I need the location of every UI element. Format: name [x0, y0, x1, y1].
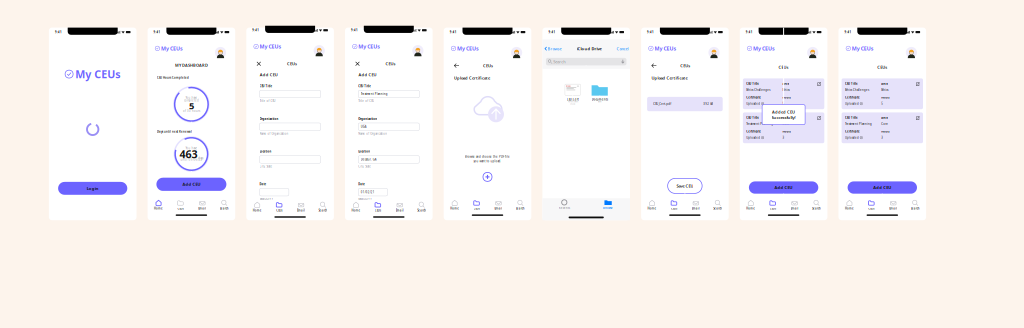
- button[interactable]: Back: [651, 63, 657, 68]
- staticText: Ethics: [782, 88, 789, 92]
- staticText: Email: [692, 207, 700, 210]
- staticText: Search: [417, 209, 426, 212]
- button[interactable]: Edit: [916, 82, 920, 86]
- staticText: Treatment Planning: [845, 122, 872, 126]
- staticText: MM/DD/YY: [358, 197, 372, 201]
- staticText: CEUs: [770, 207, 776, 210]
- button[interactable]: CEUs: [860, 199, 882, 211]
- button[interactable]: Email: [882, 199, 904, 211]
- staticText: Email: [494, 207, 502, 210]
- button[interactable]: Email: [784, 199, 805, 211]
- staticText: CEUs: [276, 209, 282, 212]
- staticText: CEUs: [868, 207, 874, 210]
- button[interactable]: Search: [213, 199, 235, 211]
- staticText: Certificate: [746, 130, 761, 133]
- staticText: you want to upload.: [473, 159, 501, 163]
- button[interactable]: Search: [411, 200, 433, 213]
- staticText: Home: [746, 207, 755, 210]
- button[interactable]: Close: [257, 62, 261, 66]
- staticText: Date: [259, 182, 266, 186]
- staticText: Certificate: [746, 96, 761, 99]
- button[interactable]: Email: [389, 200, 411, 213]
- staticText: Organization: [358, 117, 377, 121]
- staticText: Cancel: [617, 46, 629, 51]
- button[interactable]: Save CEU: [668, 178, 702, 193]
- button[interactable]: Search: [509, 199, 531, 211]
- staticText: 5: [189, 99, 194, 112]
- button[interactable]: Home: [345, 200, 367, 213]
- staticText: Hours: [782, 130, 790, 133]
- button[interactable]: Home: [838, 199, 860, 211]
- staticText: Ethics Challenges: [845, 88, 869, 92]
- staticText: My CEUs: [358, 43, 380, 50]
- staticText: Login: [87, 186, 99, 191]
- button[interactable]: CEUs: [466, 199, 487, 211]
- button[interactable]: CEUs: [762, 199, 784, 211]
- staticText: 392 kB: [703, 102, 713, 106]
- button[interactable]: Cancel: [617, 47, 629, 51]
- button[interactable]: Close: [355, 62, 360, 66]
- button[interactable]: Login: [58, 182, 127, 195]
- staticText: Add CEU: [358, 72, 376, 77]
- button[interactable]: Edit: [916, 116, 920, 120]
- button[interactable]: Home: [444, 199, 466, 211]
- staticText: Home: [154, 207, 163, 210]
- button[interactable]: Back: [454, 63, 459, 68]
- button[interactable]: Home: [641, 199, 663, 211]
- staticText: Home: [351, 209, 360, 212]
- staticText: Save CEU: [676, 183, 693, 188]
- staticText: My CEUs: [852, 45, 874, 52]
- staticText: Area: [782, 82, 789, 85]
- button[interactable]: Home: [740, 199, 762, 211]
- staticText: Home: [647, 207, 656, 210]
- button[interactable]: Email: [290, 200, 312, 213]
- staticText: Browse and choose the PDF file: [465, 155, 510, 158]
- button[interactable]: CEUs: [268, 200, 290, 213]
- button[interactable]: CEUs: [169, 199, 191, 211]
- staticText: 9:41: [548, 30, 555, 34]
- staticText: Area: [782, 116, 789, 119]
- button[interactable]: Browse: [483, 172, 492, 181]
- staticText: Ethics: [881, 88, 888, 92]
- button[interactable]: Search: [707, 199, 729, 211]
- staticText: City, State: [358, 165, 371, 168]
- staticText: Email: [198, 207, 206, 210]
- staticText: My CEUs: [457, 45, 479, 52]
- button[interactable]: Home: [246, 200, 268, 213]
- staticText: CEUs: [473, 207, 479, 210]
- staticText: Upload Certificate: [651, 75, 687, 81]
- staticText: Added CEU: [772, 109, 795, 115]
- staticText: Name of Organization: [259, 132, 288, 135]
- staticText: Add CEU: [260, 72, 278, 77]
- button[interactable]: Browse: [586, 198, 630, 210]
- button[interactable]: Recents: [542, 198, 586, 210]
- button[interactable]: Add CEU: [848, 181, 917, 194]
- staticText: Upload Certificate: [454, 75, 490, 81]
- button[interactable]: Edit: [817, 82, 821, 86]
- staticText: Email: [297, 209, 305, 212]
- staticText: 9:41: [351, 28, 358, 32]
- button[interactable]: CEUs: [367, 200, 389, 213]
- staticText: Browse: [547, 46, 561, 51]
- button[interactable]: Add CEU: [749, 181, 818, 194]
- button[interactable]: Email: [487, 199, 509, 211]
- button[interactable]: Edit: [817, 116, 821, 120]
- button[interactable]: CEUs: [663, 199, 685, 211]
- button[interactable]: Email: [685, 199, 707, 211]
- staticText: 9:41: [844, 30, 851, 34]
- staticText: CEU Title: [845, 116, 858, 119]
- button[interactable]: Search: [805, 199, 827, 211]
- button[interactable]: Add CEU: [156, 178, 226, 191]
- staticText: My CEUs: [654, 45, 676, 52]
- button[interactable]: Email: [191, 199, 213, 211]
- button[interactable]: Search: [904, 199, 926, 211]
- staticText: Uploaded: [845, 136, 859, 139]
- button[interactable]: Home: [148, 199, 169, 211]
- staticText: My CEUs: [161, 45, 183, 52]
- staticText: of 30 hours: [183, 109, 200, 113]
- staticText: 9:41: [647, 30, 654, 34]
- button[interactable]: Search: [312, 200, 334, 213]
- button[interactable]: Browse: [545, 47, 561, 51]
- staticText: CEUs: [375, 209, 381, 212]
